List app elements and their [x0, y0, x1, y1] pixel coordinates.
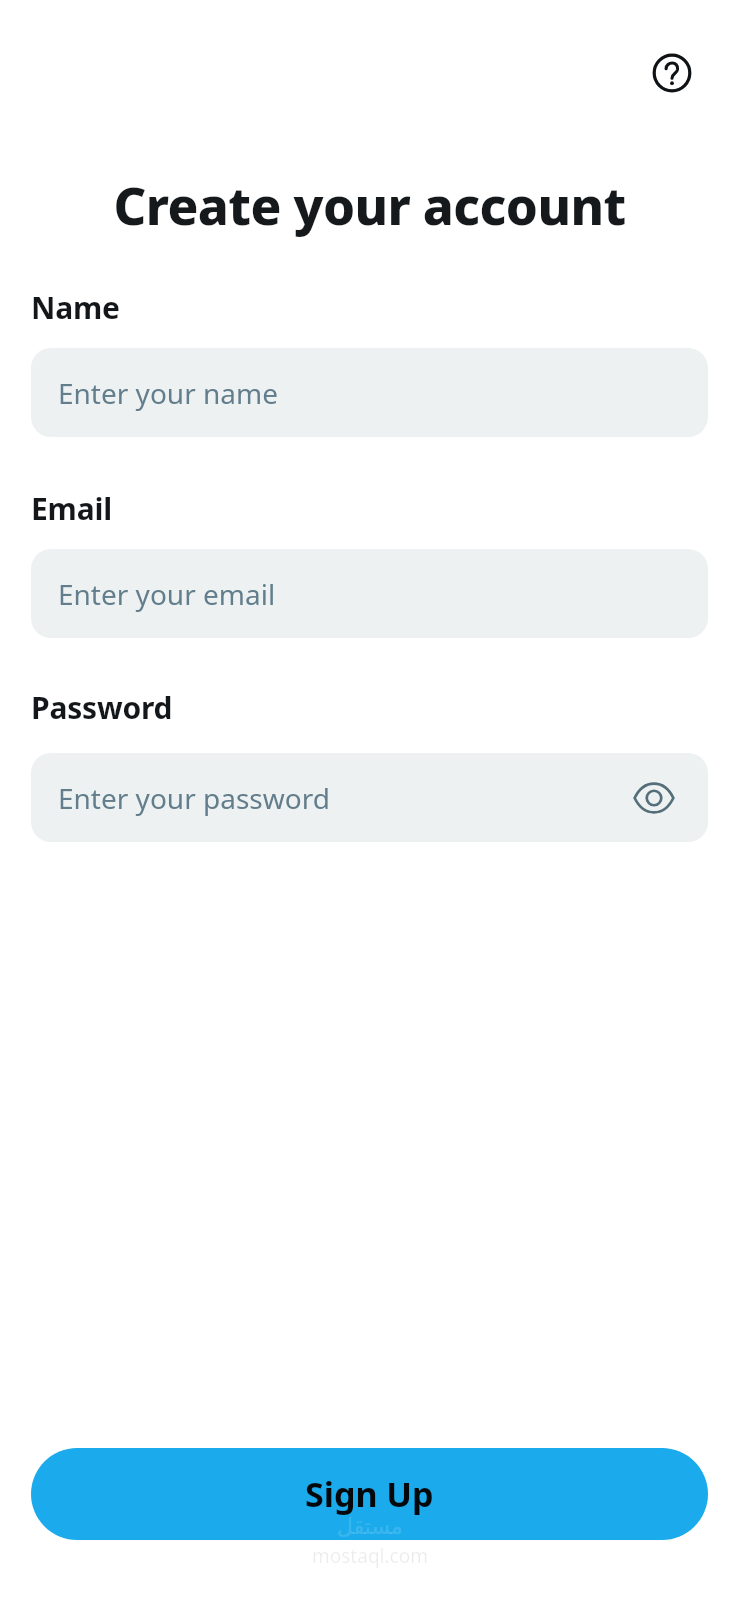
staticText: Enter your password — [58, 779, 330, 817]
staticText: Email — [31, 488, 112, 529]
staticText: Create your account — [113, 170, 626, 239]
staticText: Password — [31, 687, 173, 728]
staticText: Sign Up — [305, 1471, 434, 1517]
button[interactable]: Enter your name — [31, 348, 708, 437]
staticText: Enter your name — [58, 374, 278, 412]
staticText: Enter your email — [58, 575, 276, 613]
button[interactable]: Sign Up — [31, 1448, 708, 1540]
button[interactable]: Help — [644, 45, 700, 101]
button[interactable]: Enter your password — [31, 753, 708, 842]
staticText: Name — [31, 287, 120, 328]
button[interactable]: Show password — [626, 770, 682, 826]
button[interactable]: Enter your email — [31, 549, 708, 638]
staticText: مستقل — [337, 1514, 403, 1540]
staticText: mostaql.com — [312, 1543, 428, 1569]
